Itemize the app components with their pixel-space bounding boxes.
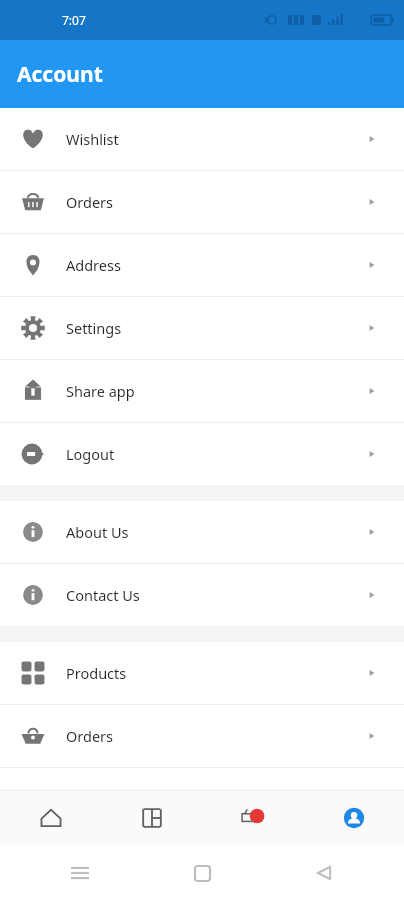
staticText: Address: [66, 255, 121, 275]
button[interactable]: About Us: [0, 501, 404, 563]
staticText: Share app: [66, 381, 135, 401]
staticText: Orders: [66, 726, 114, 746]
button[interactable]: Contact Us: [0, 564, 404, 626]
staticText: Logout: [66, 444, 115, 464]
button[interactable]: Dashboard: [101, 790, 202, 845]
staticText: Account: [17, 60, 103, 89]
button[interactable]: Back: [304, 853, 344, 893]
staticText: Orders: [66, 192, 114, 212]
button[interactable]: Account: [303, 790, 404, 845]
button[interactable]: Recents: [60, 853, 100, 893]
button[interactable]: Cart, 11 items: [202, 790, 303, 845]
staticText: About Us: [66, 522, 129, 542]
button[interactable]: Address: [0, 234, 404, 296]
staticText: 7:07: [62, 12, 86, 28]
button[interactable]: Home: [182, 853, 222, 893]
staticText: Products: [66, 663, 127, 683]
button[interactable]: Settings: [0, 297, 404, 359]
button[interactable]: Home: [0, 790, 101, 845]
button[interactable]: Share app: [0, 360, 404, 422]
button[interactable]: Wishlist: [0, 108, 404, 170]
staticText: Settings: [66, 318, 122, 338]
button[interactable]: Products: [0, 642, 404, 704]
staticText: Wishlist: [66, 129, 119, 149]
staticText: Contact Us: [66, 585, 140, 605]
button[interactable]: Orders: [0, 705, 404, 767]
button[interactable]: Orders: [0, 171, 404, 233]
button[interactable]: Logout: [0, 423, 404, 485]
